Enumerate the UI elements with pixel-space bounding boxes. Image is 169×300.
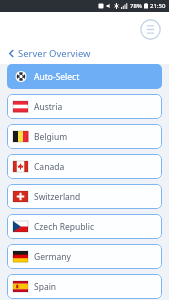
staticText: Spain: [34, 281, 57, 293]
button[interactable]: Germany: [7, 244, 162, 269]
staticText: Belgium: [34, 131, 68, 143]
staticText: Germany: [34, 251, 71, 263]
button[interactable]: Spain: [7, 274, 162, 299]
button[interactable]: Server Overview: [0, 46, 169, 60]
button[interactable]: Austria: [7, 94, 162, 119]
staticText: Switzerland: [34, 191, 81, 203]
staticText: 21:50: [150, 2, 166, 10]
staticText: Auto-Select: [34, 71, 80, 83]
staticText: Server Overview: [18, 47, 91, 60]
staticText: Canada: [34, 161, 65, 173]
staticText: 78%: [130, 2, 142, 10]
button[interactable]: Czech Republic: [7, 214, 162, 239]
staticText: Austria: [34, 101, 63, 113]
button[interactable]: Auto-Select: [7, 64, 162, 89]
button[interactable]: Canada: [7, 154, 162, 179]
staticText: Czech Republic: [34, 221, 94, 233]
button[interactable]: Menu: [138, 17, 162, 41]
button[interactable]: Belgium: [7, 124, 162, 149]
button[interactable]: Switzerland: [7, 184, 162, 209]
